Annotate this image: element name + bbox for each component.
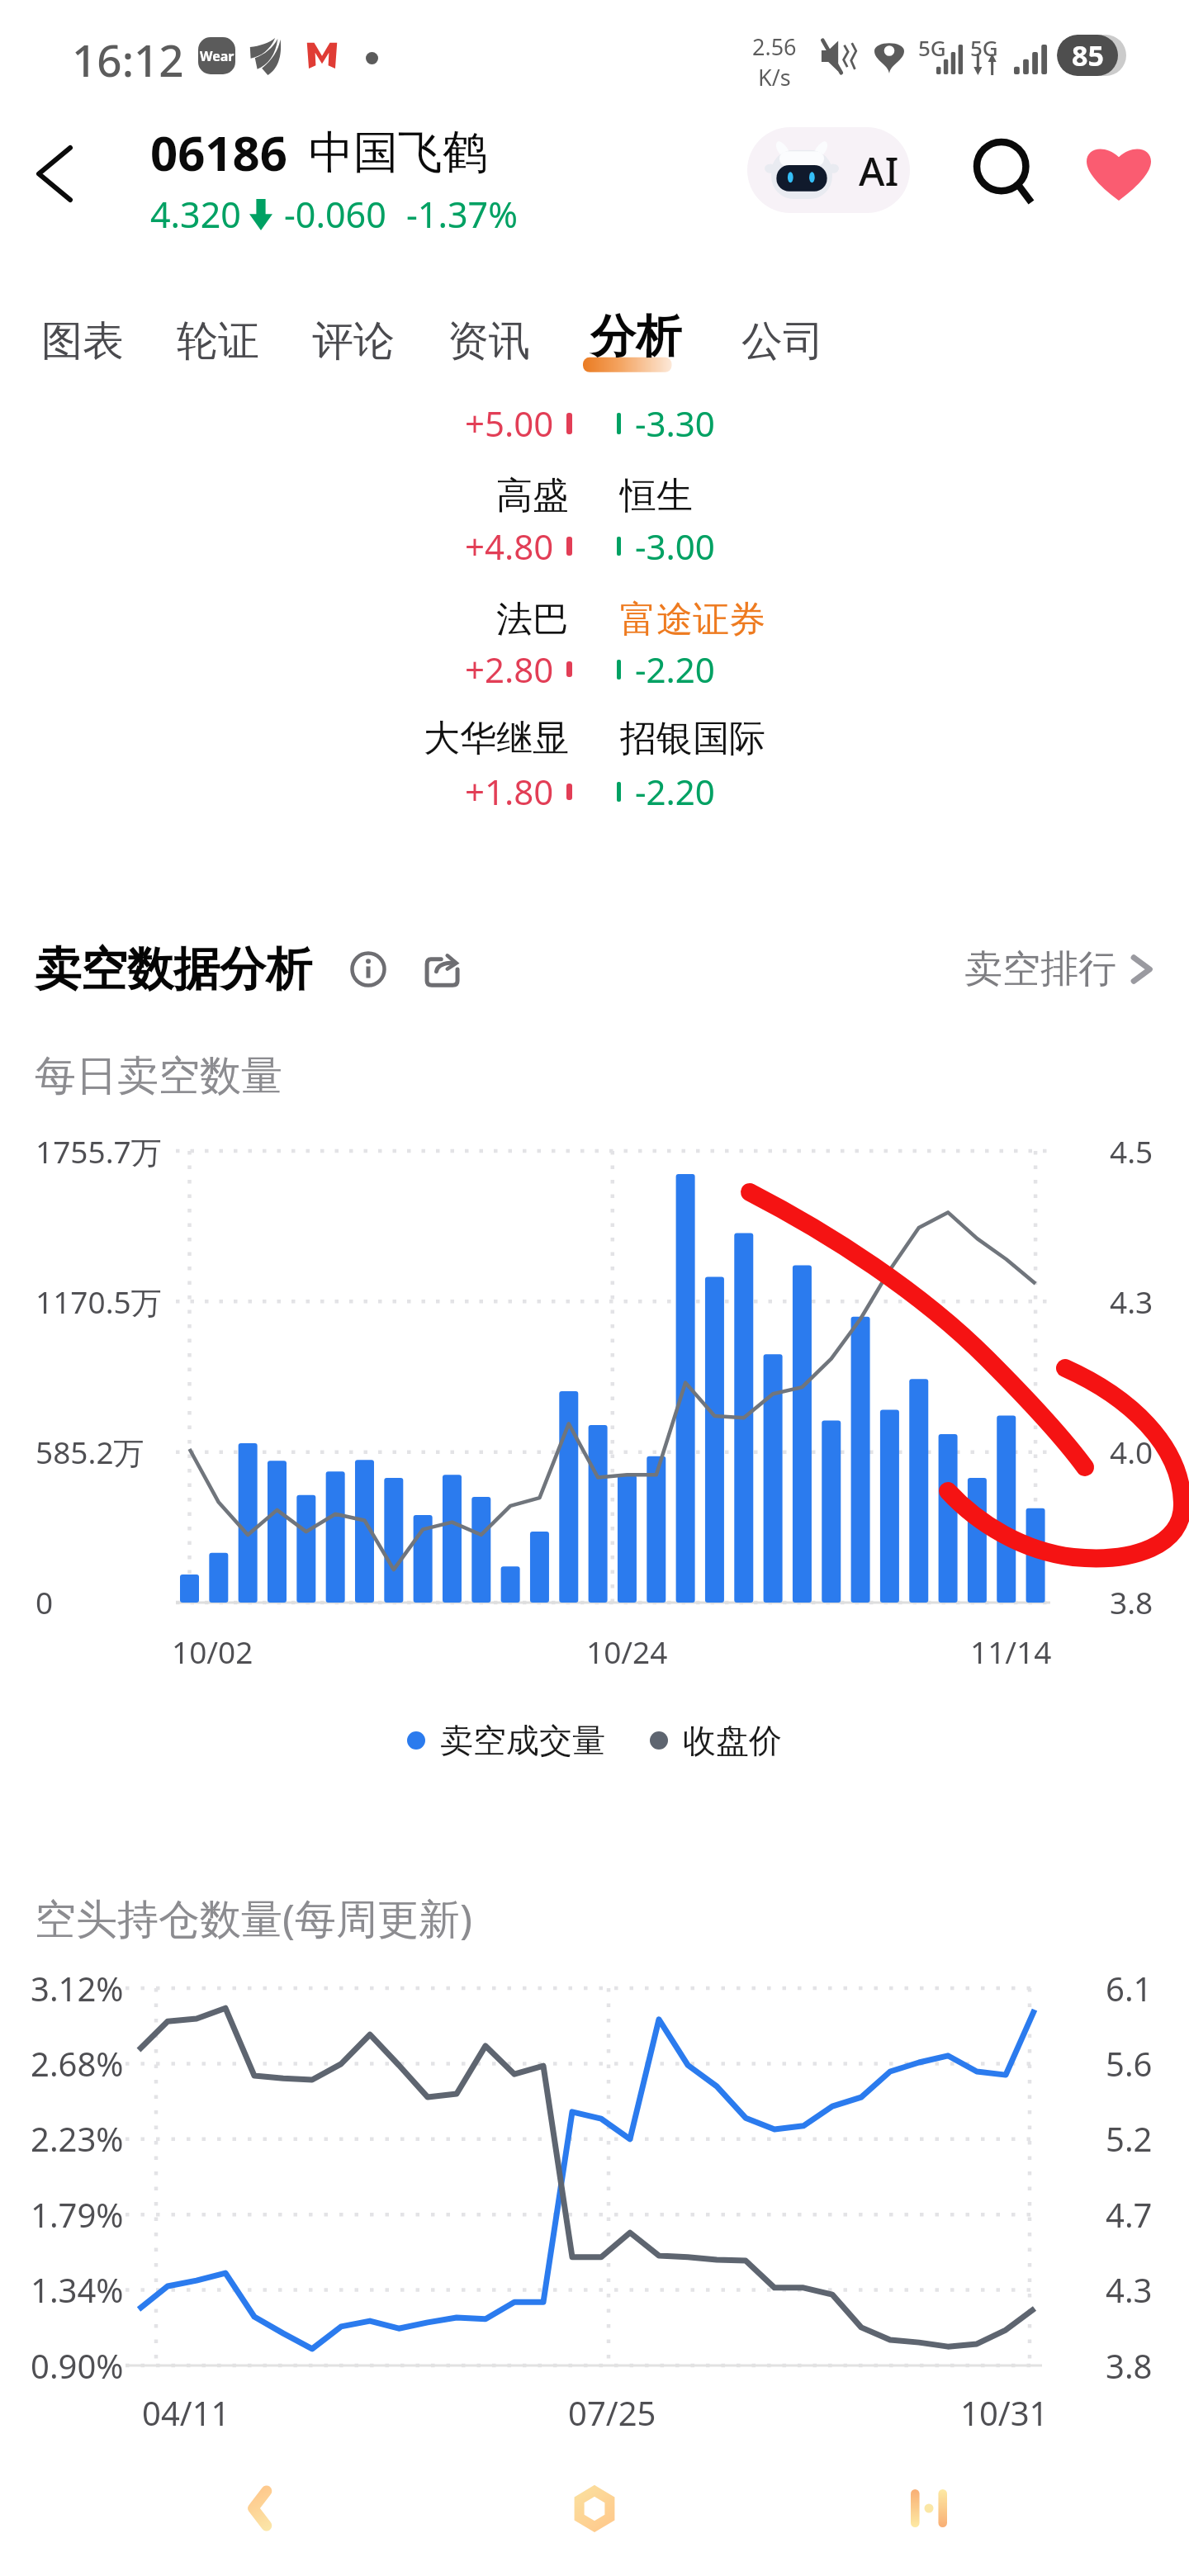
staticText: 资讯 [448,315,530,367]
staticText: 评论 [312,315,395,367]
staticText: 收盘价 [683,1720,782,1761]
button[interactable]: 资讯 [421,304,557,378]
staticText: 3.12% [31,1966,124,2010]
staticText: 5.6 [1106,2041,1153,2086]
staticText: 中国飞鹤 [309,125,487,181]
staticText: +4.80 [465,523,554,570]
staticText: 10/02 [172,1631,253,1672]
button[interactable]: Back [5,124,104,223]
staticText: 06186 [150,120,287,185]
staticText: 04/11 [142,2390,230,2435]
staticText: 高盛 [496,473,569,519]
staticText: 图表 [41,315,124,367]
staticText: AI [859,144,899,197]
staticText: 585.2万 [36,1431,144,1473]
staticText: -1.37% [406,190,518,239]
staticText: 0.90% [31,2343,124,2388]
button[interactable]: 图表 [15,304,150,378]
button[interactable]: Info [344,945,392,993]
staticText: 4.7 [1106,2192,1153,2237]
staticText: 富途证券 [620,597,765,642]
staticText: K/s [758,62,791,89]
staticText: 公司 [741,315,824,367]
staticText: 4.3 [1106,2267,1153,2312]
staticText: 5.2 [1106,2116,1153,2161]
button[interactable]: Home [545,2459,644,2558]
staticText: 卖空数据分析 [35,940,312,999]
staticText: +1.80 [465,768,554,815]
staticText: -2.20 [635,646,715,693]
staticText: 1.34% [31,2267,124,2312]
staticText: +2.80 [465,646,554,693]
button[interactable]: Recents [879,2459,978,2558]
staticText: 11/14 [970,1631,1052,1672]
staticText: 1170.5万 [36,1281,162,1323]
staticText: 1.79% [31,2192,124,2237]
staticText: 2.23% [31,2116,124,2161]
staticText: 5G [970,33,998,62]
button[interactable]: Back [211,2459,310,2558]
staticText: 4.320 [150,190,241,239]
staticText: 4.0 [1110,1431,1153,1472]
staticText: 4.3 [1110,1281,1153,1322]
staticText: -2.20 [635,768,715,815]
button[interactable]: 轮证 [150,304,286,378]
staticText: -0.060 [284,190,386,239]
button[interactable]: AI assistant [747,127,910,213]
staticText: 轮证 [177,315,259,367]
button[interactable]: 评论 [286,304,421,378]
button[interactable]: 公司 [715,304,850,378]
staticText: 分析 [590,308,681,365]
staticText: 10/31 [960,2390,1049,2435]
staticText: 5G [918,33,946,62]
staticText: 卖空成交量 [440,1720,605,1761]
staticText: 法巴 [496,597,569,642]
staticText: 6.1 [1106,1966,1153,2010]
staticText: 3.8 [1106,2343,1153,2388]
staticText: 每日卖空数量 [35,1050,282,1102]
staticText: 07/25 [568,2390,656,2435]
staticText: Wear [200,47,234,65]
staticText: 空头持仓数量(每周更新) [35,1890,472,1946]
staticText: 大华继显 [424,716,569,761]
staticText: -3.30 [635,400,715,447]
staticText: 2.56 [752,31,797,62]
button[interactable]: Favorite [1069,124,1168,223]
button[interactable]: Search [955,124,1054,223]
staticText: -3.00 [635,523,715,570]
staticText: 10/24 [586,1631,668,1672]
staticText: 1755.7万 [36,1130,162,1172]
staticText: 0 [36,1581,54,1622]
staticText: +5.00 [465,400,554,447]
button[interactable]: 卖空排行 [958,939,1159,1000]
staticText: 2.68% [31,2041,124,2086]
staticText: 3.8 [1110,1581,1153,1622]
staticText: 16:12 [72,30,184,89]
button[interactable]: Share [419,945,467,993]
button[interactable]: 分析 [557,304,715,378]
staticText: 恒生 [620,473,693,519]
staticText: 85 [1072,36,1104,74]
staticText: 4.5 [1110,1130,1153,1172]
staticText: 招银国际 [620,716,765,761]
staticText: 卖空排行 [964,945,1116,993]
